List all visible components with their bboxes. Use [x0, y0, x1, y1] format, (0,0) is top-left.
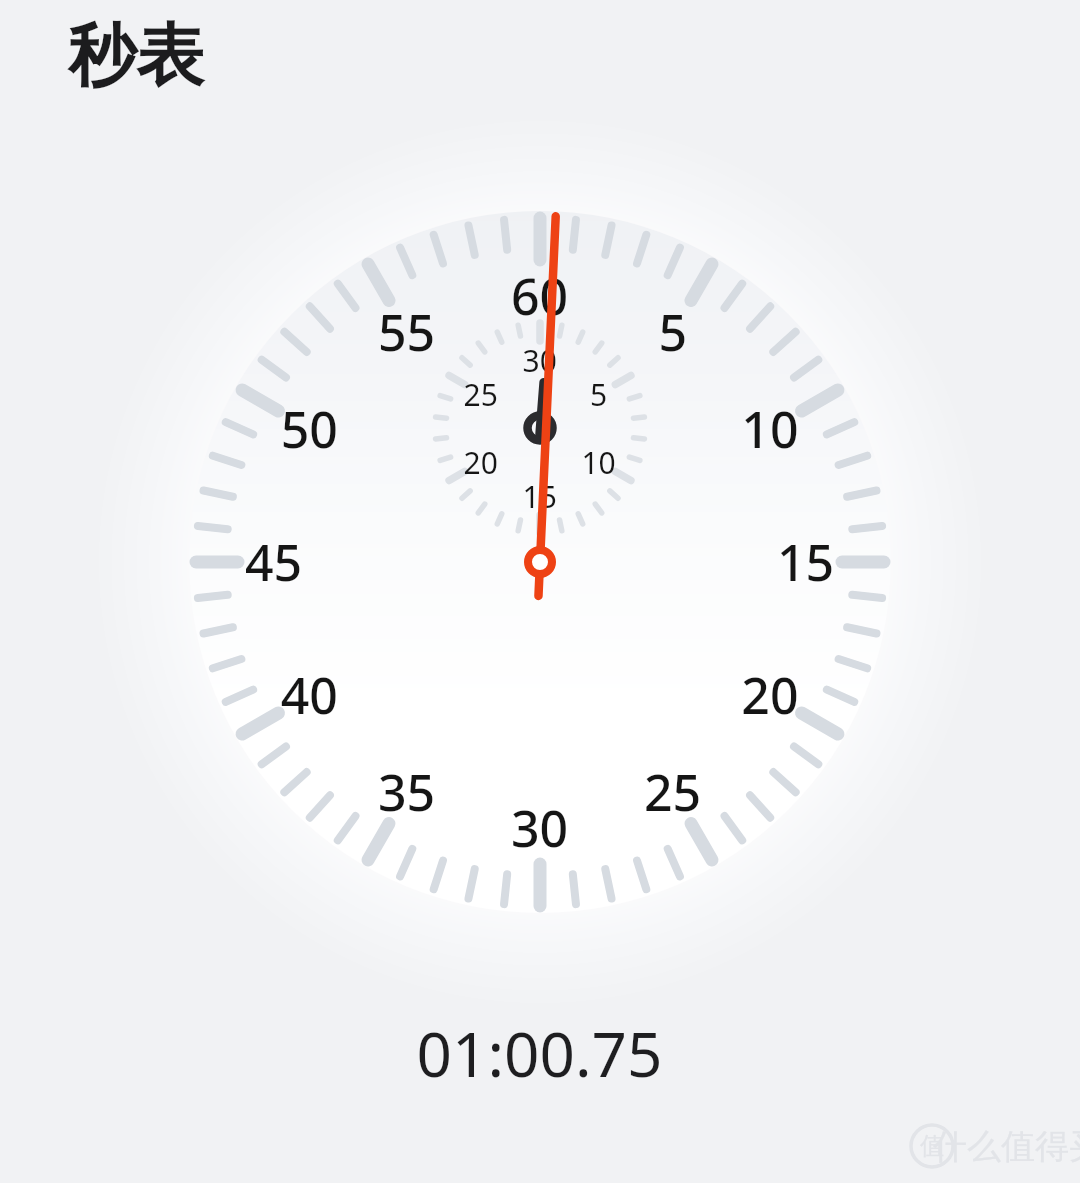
button[interactable]: Stopwatch dial	[0, 0, 1080, 1183]
